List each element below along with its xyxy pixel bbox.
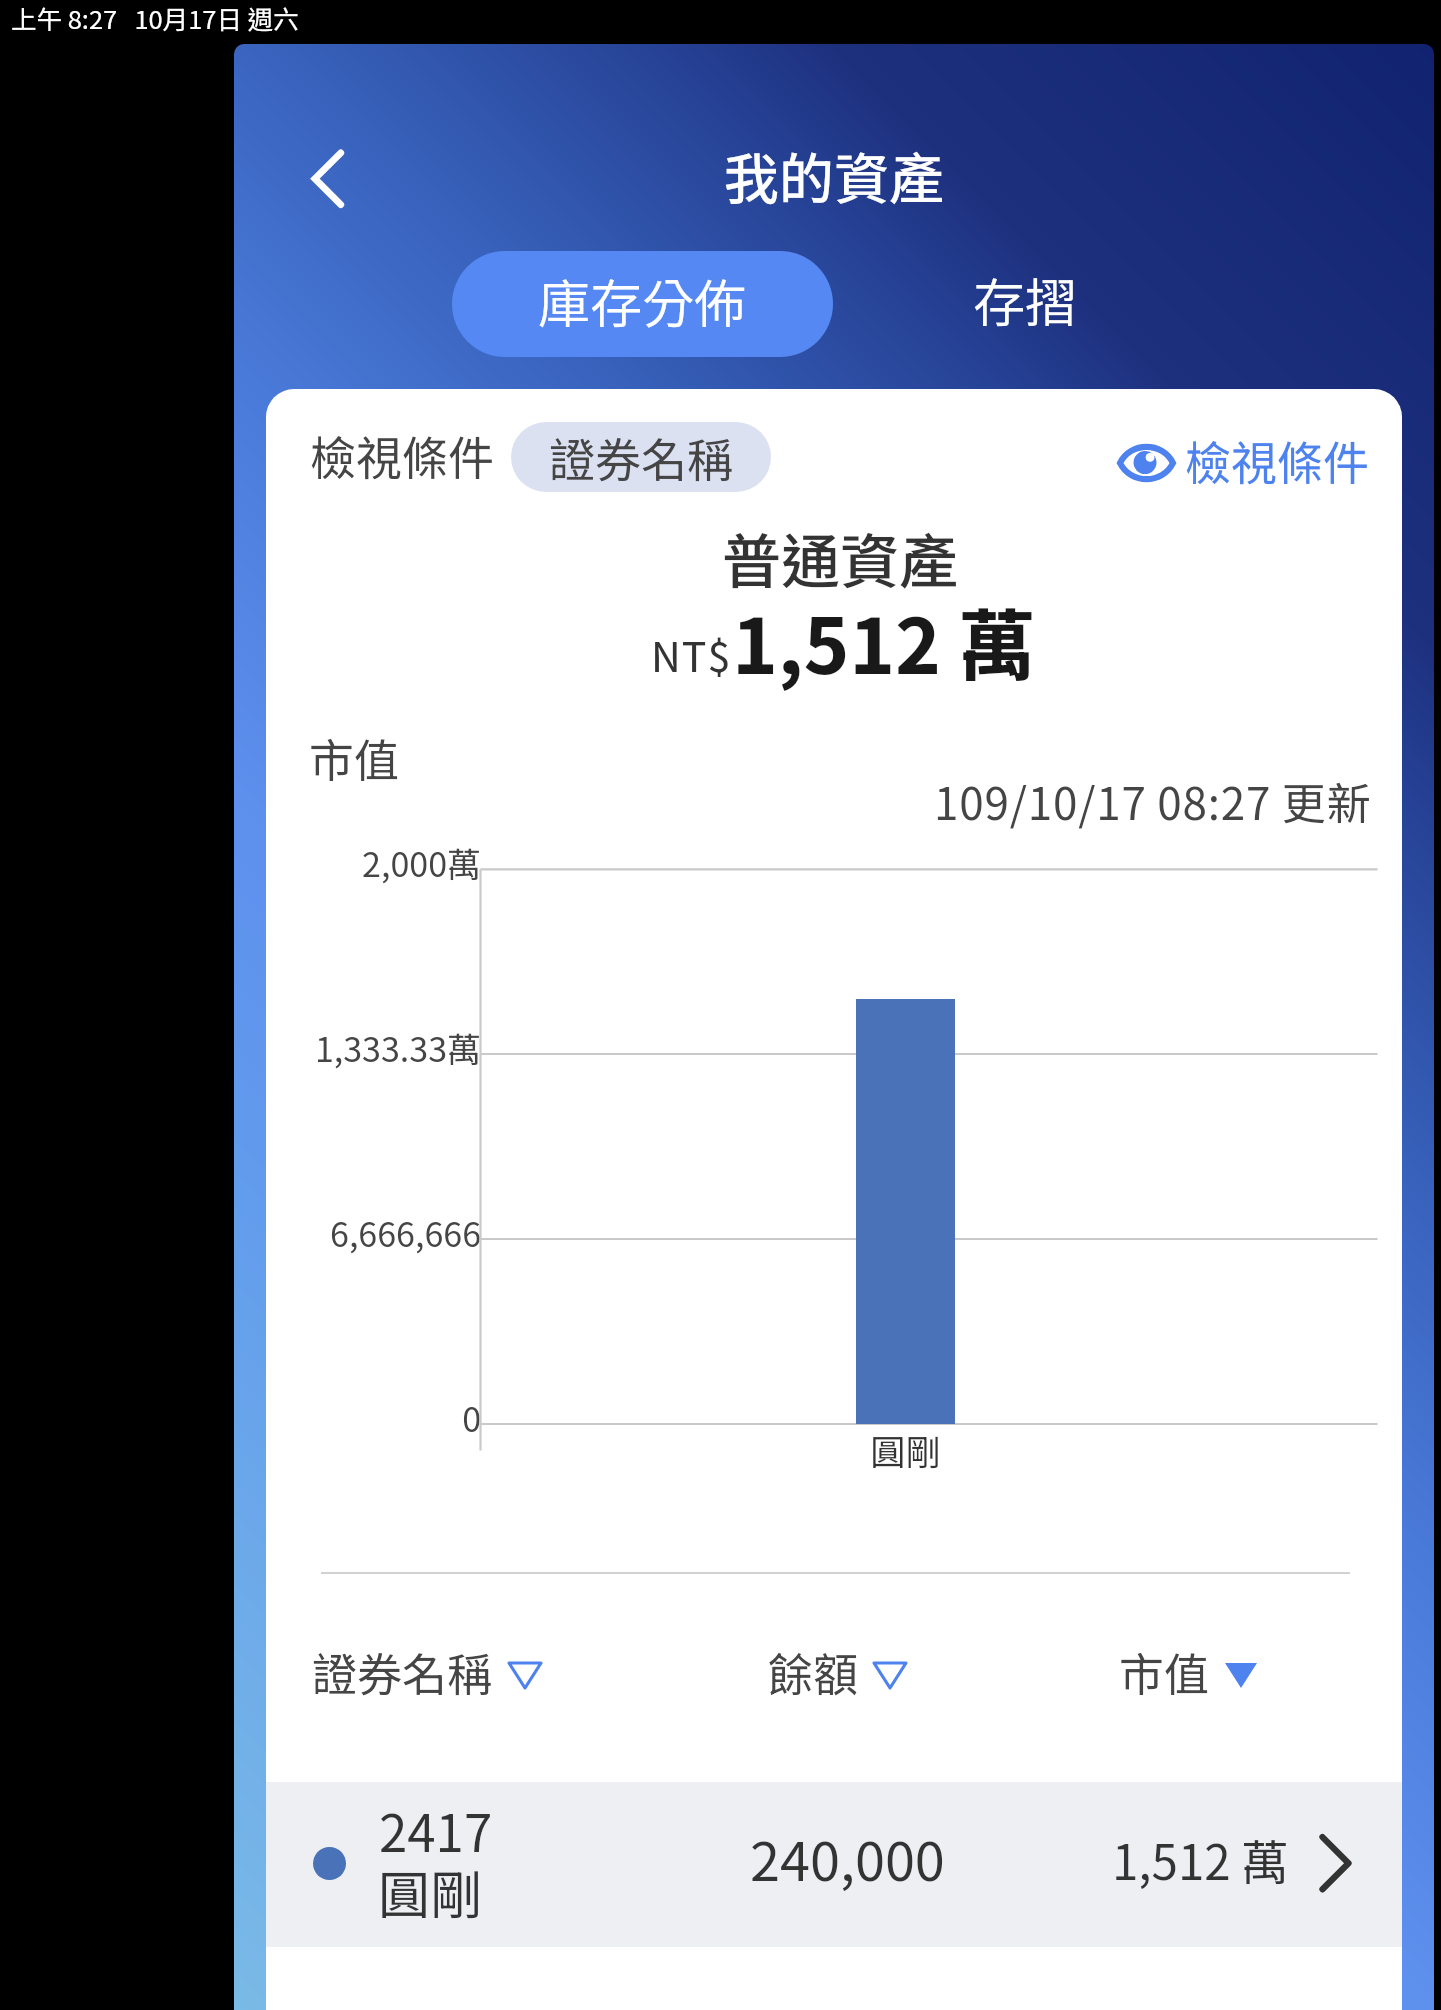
staticText: 餘額 [768,1639,859,1704]
staticText: 庫存分佈 [538,263,747,338]
button[interactable]: 證券名稱 [306,1631,561,1709]
staticText: NT$ [651,624,732,683]
staticText: 上午 8:27 10月17日 週六 [11,0,299,36]
staticText: 檢視條件 [1185,427,1369,493]
staticText: 證券名稱 [549,424,733,491]
staticText: 市值 [1119,1639,1210,1704]
staticText: 證券名稱 [312,1639,493,1704]
staticText: 2,000萬 [362,838,481,887]
staticText: 1,512 萬 [1112,1825,1289,1894]
staticText: 我的資產 [724,135,945,215]
button[interactable]: Back [282,124,400,242]
button[interactable]: 市值 [1113,1631,1277,1709]
staticText: 1,333.33萬 [314,1023,481,1072]
staticText: 市值 [309,725,400,790]
staticText: 6,666,666 [330,1208,481,1257]
staticText: 1,512 萬 [732,585,1036,696]
staticText: 240,000 [750,1818,945,1896]
staticText: 普通資產 [722,515,959,600]
staticText: 存摺 [973,262,1078,337]
staticText: 2417 [379,1793,493,1867]
button[interactable]: Detail [1289,1801,1379,1927]
staticText: 圓剛 [870,1424,941,1475]
button[interactable]: 存摺 [915,251,1135,357]
staticText: 0 [462,1393,481,1442]
staticText: 圓剛 [378,1854,483,1929]
button[interactable]: 證券名稱 [511,422,771,492]
button[interactable]: 2417 [266,1782,1402,1947]
button[interactable]: 庫存分佈 [452,251,833,357]
button[interactable]: 餘額 [762,1631,926,1709]
staticText: 109/10/17 08:27 更新 [934,769,1372,833]
button[interactable]: 檢視條件 [1111,426,1373,492]
staticText: 檢視條件 [310,422,494,489]
